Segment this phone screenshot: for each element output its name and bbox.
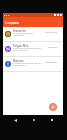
staticText: Utilisateur xyxy=(13,34,24,37)
staticText: Bronze Sm xyxy=(13,29,26,32)
button[interactable]: Back xyxy=(11,116,19,124)
button[interactable]: Recents xyxy=(48,116,56,124)
staticText: Auditez référencem xyxy=(13,32,34,35)
button[interactable]: Home xyxy=(30,116,38,124)
button[interactable]: More options xyxy=(55,19,62,26)
staticText: Rechercher xyxy=(45,61,57,64)
staticText: Collections p xyxy=(13,64,27,67)
button[interactable]: Bronze Sm xyxy=(3,27,63,41)
staticText: Coupons xyxy=(5,20,19,24)
staticText: Mitsouin xyxy=(13,59,24,62)
staticText: Audit avancé modules dans xyxy=(13,47,42,50)
staticText: Utilisateur pro xyxy=(13,49,28,52)
staticText: 23/06/2019 xyxy=(45,31,57,34)
button[interactable]: Polypur Wire xyxy=(3,42,63,56)
staticText: Audithez xyxy=(47,46,57,49)
button[interactable]: Mitsouin xyxy=(3,57,63,71)
staticText: Accéder/Rechercher les cat xyxy=(13,62,41,65)
staticText: Polypur Wire xyxy=(13,44,29,47)
button[interactable]: Add xyxy=(49,103,57,111)
